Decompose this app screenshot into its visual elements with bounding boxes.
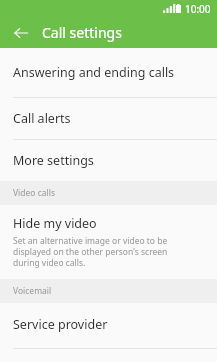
staticText: Voicemail xyxy=(13,285,52,297)
staticText: Call alerts xyxy=(13,110,71,127)
staticText: Call settings xyxy=(42,23,122,42)
staticText: Set an alternative image or video to be … xyxy=(13,235,168,268)
button[interactable]: Hide my video xyxy=(0,205,217,279)
button[interactable]: Service provider xyxy=(0,303,217,348)
staticText: Answering and ending calls xyxy=(13,64,175,81)
staticText: Video calls xyxy=(13,187,55,199)
staticText: Hide my video xyxy=(13,215,97,232)
staticText: More settings xyxy=(13,152,94,169)
button[interactable]: Back xyxy=(8,20,34,46)
staticText: 10:00 xyxy=(185,2,211,16)
button[interactable]: More settings xyxy=(0,140,217,181)
button[interactable]: Call alerts xyxy=(0,98,217,139)
staticText: Service provider xyxy=(13,316,108,333)
button[interactable]: Answering and ending calls xyxy=(0,48,217,97)
